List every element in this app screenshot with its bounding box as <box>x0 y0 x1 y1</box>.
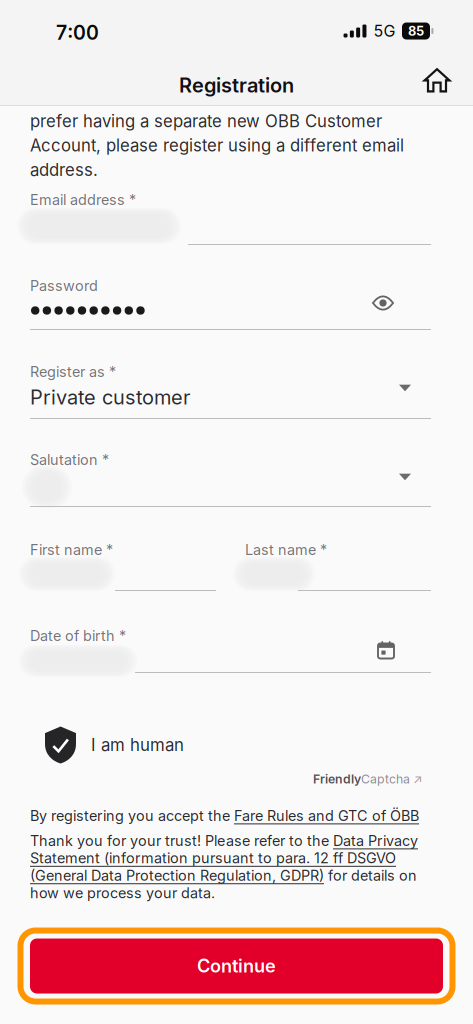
staticText: Salutation * <box>30 451 109 468</box>
staticText: Password <box>30 277 98 294</box>
staticText: 85 <box>408 23 424 39</box>
staticText: Registration <box>179 73 294 97</box>
button[interactable]: Continue <box>16 926 457 1006</box>
button[interactable]: I am human <box>45 723 245 767</box>
staticText: 5G <box>373 21 395 41</box>
staticText: First name * <box>30 541 113 558</box>
button[interactable]: Friendly <box>313 770 423 788</box>
button[interactable]: Pick date of birth <box>366 634 406 666</box>
button[interactable]: Show password <box>360 286 406 320</box>
staticText: By registering you accept the Fare Rules… <box>30 807 419 824</box>
staticText: 7:00 <box>56 21 99 45</box>
staticText: I am human <box>91 735 184 755</box>
staticText: Thank you for your trust! Please refer t… <box>30 832 418 902</box>
staticText: Continue <box>197 955 276 977</box>
staticText: Friendly <box>313 772 361 786</box>
staticText: ↗ <box>410 772 423 786</box>
staticText: Date of birth * <box>30 627 126 644</box>
button[interactable]: Choose customer type <box>385 373 425 403</box>
button[interactable]: Choose salutation <box>385 462 425 492</box>
staticText: prefer having a separate new OBB Custome… <box>30 111 404 180</box>
staticText: Captcha <box>361 772 410 786</box>
staticText: Private customer <box>30 385 190 409</box>
staticText: Last name * <box>245 541 327 558</box>
button[interactable]: Home <box>415 60 459 100</box>
staticText: Email address * <box>30 191 136 208</box>
staticText: Register as * <box>30 363 116 380</box>
